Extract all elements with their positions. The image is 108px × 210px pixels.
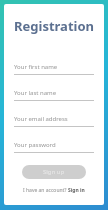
staticText: Your last name — [14, 89, 57, 97]
staticText: Sign up — [43, 168, 65, 176]
button[interactable]: Sign up — [22, 165, 86, 179]
staticText: I have an account? — [23, 187, 68, 194]
button[interactable]: Your first name — [14, 63, 94, 75]
staticText: Registration — [14, 17, 94, 35]
button[interactable]: I have an account? — [21, 185, 87, 196]
staticText: Your email address — [14, 115, 68, 123]
staticText: Your first name — [14, 63, 58, 71]
button[interactable]: Your email address — [14, 115, 94, 127]
staticText: Sign in — [68, 187, 85, 194]
staticText: Your password — [14, 141, 56, 149]
button[interactable]: Your password — [14, 141, 94, 153]
button[interactable]: Your last name — [14, 89, 94, 101]
